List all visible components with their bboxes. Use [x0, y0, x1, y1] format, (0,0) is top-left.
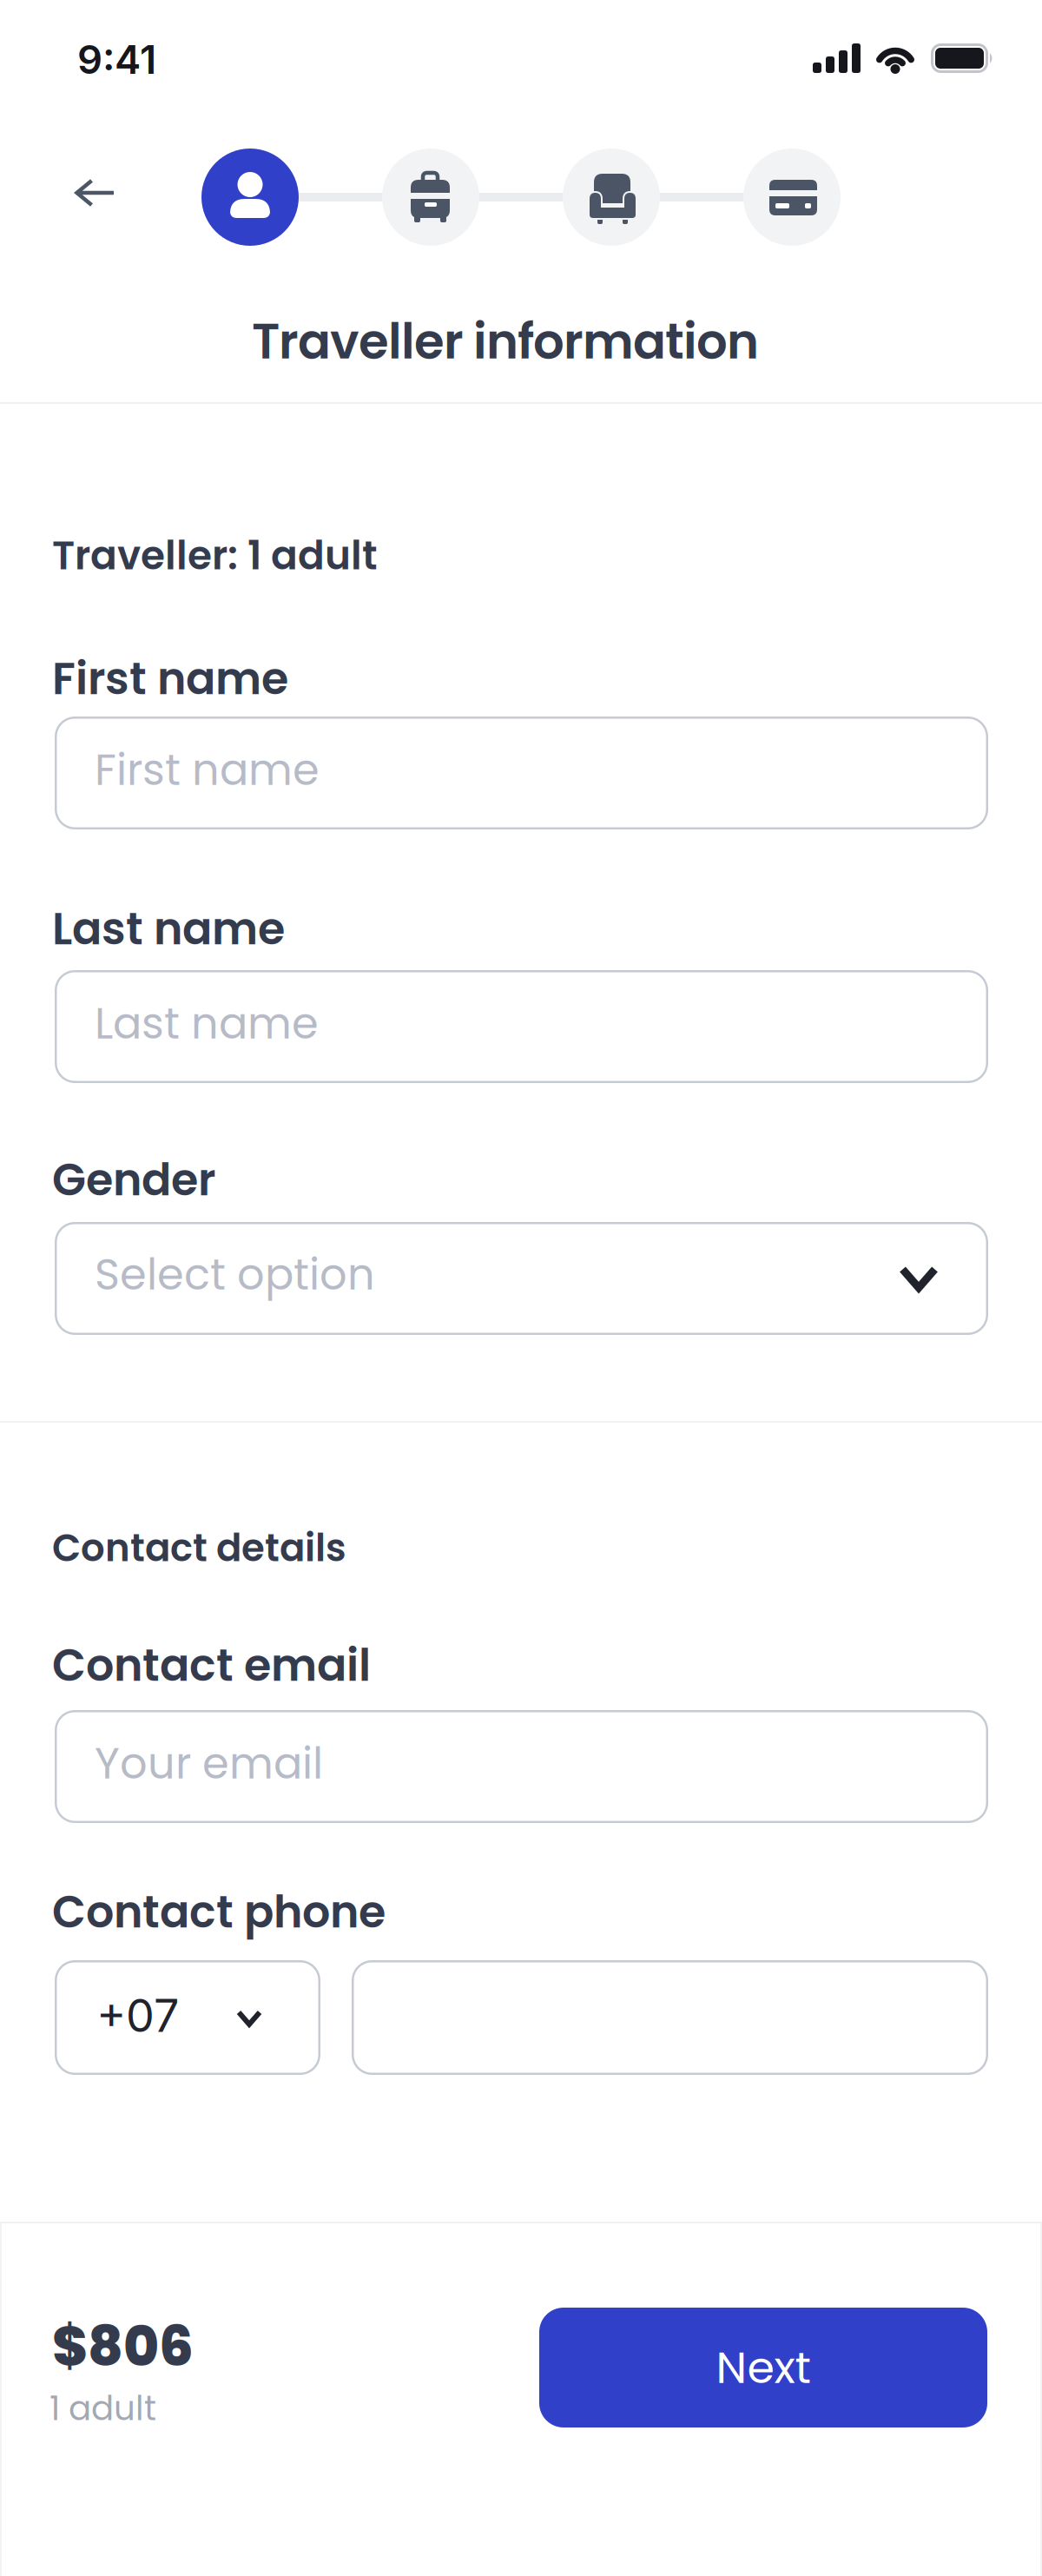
- staticText: Last name: [95, 994, 319, 1054]
- staticText: Contact details: [52, 1522, 346, 1574]
- button[interactable]: Country code +07: [55, 1960, 320, 2075]
- button[interactable]: Step 2: Baggage: [382, 149, 479, 246]
- staticText: 1 adult: [49, 2385, 156, 2432]
- staticText: +07: [96, 1988, 179, 2043]
- staticText: Last name: [52, 898, 285, 960]
- staticText: Select option: [95, 1245, 375, 1305]
- textField[interactable]: Your email: [55, 1710, 988, 1823]
- button[interactable]: Step 4: Payment: [743, 149, 841, 246]
- staticText: $806: [52, 2308, 194, 2385]
- staticText: Traveller information: [252, 307, 759, 376]
- button[interactable]: Back: [73, 174, 118, 212]
- staticText: Next: [716, 2337, 811, 2398]
- staticText: Gender: [52, 1149, 215, 1211]
- button[interactable]: Step 3: Seat selection: [563, 149, 660, 246]
- textField[interactable]: Phone number: [352, 1960, 988, 2075]
- staticText: Contact email: [52, 1635, 371, 1696]
- button[interactable]: Next: [539, 2308, 987, 2427]
- staticText: First name: [52, 648, 288, 709]
- staticText: Traveller: 1 adult: [52, 528, 378, 583]
- button[interactable]: Gender: Select option: [55, 1222, 988, 1335]
- textField[interactable]: First name: [55, 717, 988, 829]
- staticText: 9:41: [77, 36, 156, 83]
- button[interactable]: Step 1: Traveller information: [201, 149, 299, 246]
- textField[interactable]: Last name: [55, 970, 988, 1083]
- staticText: Contact phone: [52, 1881, 386, 1943]
- staticText: Your email: [95, 1734, 323, 1794]
- staticText: First name: [95, 740, 320, 800]
